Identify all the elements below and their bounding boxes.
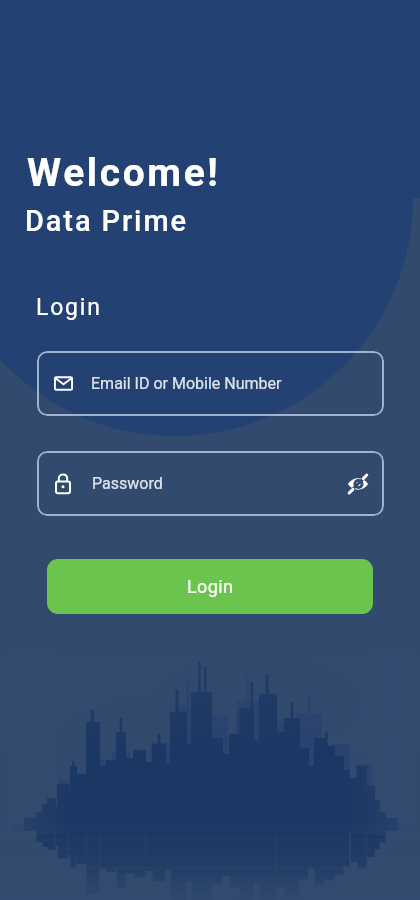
staticText: Login bbox=[36, 294, 102, 321]
staticText: Login bbox=[187, 576, 234, 597]
button[interactable]: Login bbox=[47, 559, 373, 614]
staticText: Welcome! bbox=[27, 150, 221, 196]
button[interactable]: Password bbox=[37, 451, 384, 516]
button[interactable]: Show password bbox=[338, 464, 378, 504]
staticText: Password bbox=[92, 474, 163, 493]
staticText: Data Prime bbox=[25, 204, 189, 238]
staticText: Email ID or Mobile Number bbox=[91, 374, 282, 393]
button[interactable]: Email ID or Mobile Number bbox=[37, 351, 384, 416]
